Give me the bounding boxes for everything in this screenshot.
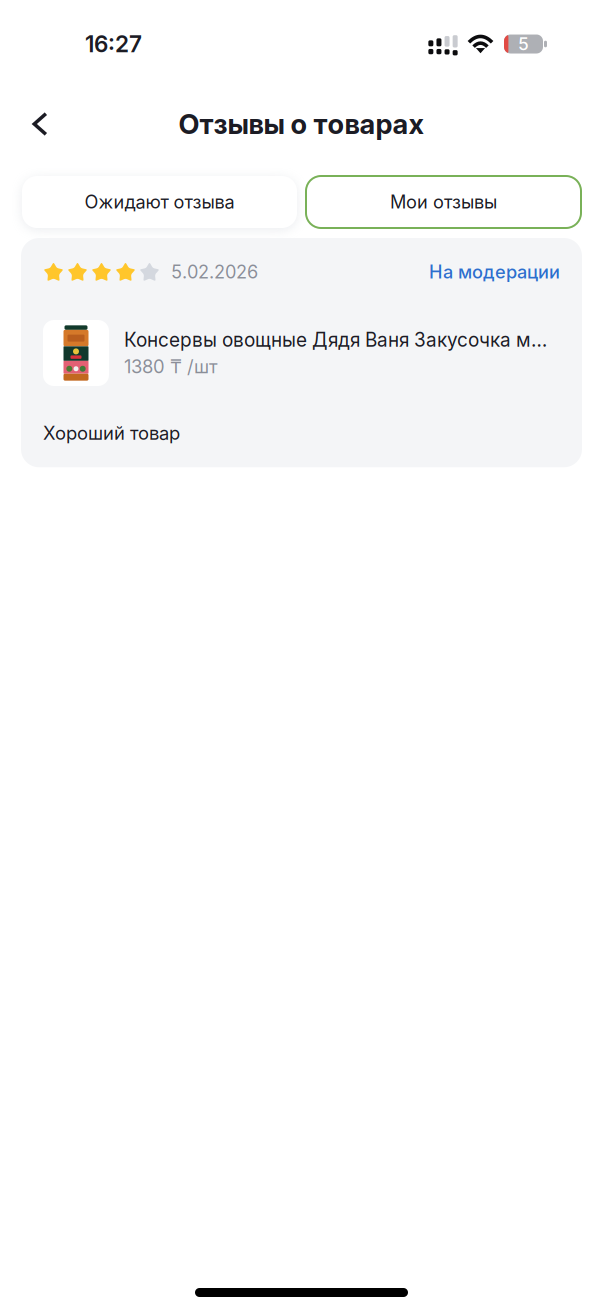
staticText: 16:27	[85, 30, 142, 58]
staticText: 5	[518, 33, 529, 54]
staticText: 1380 ₸ /шт	[124, 355, 218, 378]
button[interactable]: Ожидают отзыва	[22, 176, 297, 228]
staticText: 5.02.2026	[171, 261, 258, 283]
staticText: Хороший товар	[43, 422, 180, 444]
button[interactable]: Back	[18, 102, 62, 146]
staticText: Мои отзывы	[390, 191, 497, 213]
staticText: Ожидают отзыва	[84, 191, 234, 213]
button[interactable]: 5.02.2026	[0, 228, 603, 467]
staticText: На модерации	[429, 261, 560, 283]
staticText: Консервы овощные Дядя Ваня Закусочка м…	[124, 328, 547, 351]
button[interactable]: Мои отзывы	[306, 176, 581, 228]
staticText: Отзывы о товарах	[178, 107, 424, 141]
